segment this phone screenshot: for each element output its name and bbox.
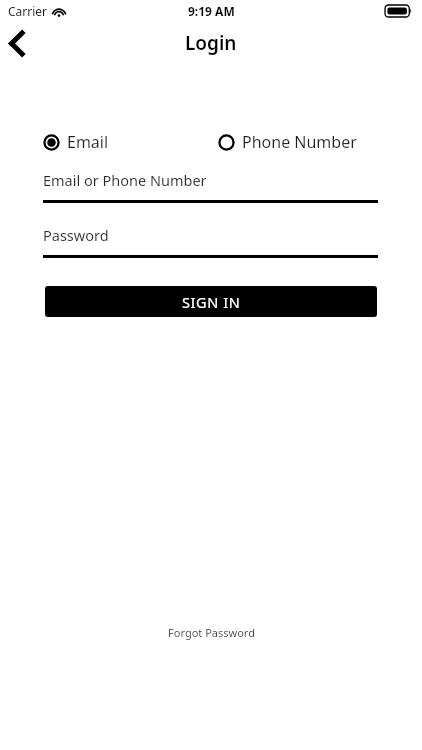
button[interactable]: Phone Number (218, 131, 357, 153)
staticText: SIGN IN (182, 292, 241, 312)
button[interactable]: SIGN IN (45, 286, 377, 317)
staticText: Email (67, 131, 109, 153)
button[interactable]: Email or Phone Number (43, 170, 378, 203)
staticText: Carrier (8, 3, 48, 19)
button[interactable]: Back (0, 22, 39, 64)
staticText: Password (43, 225, 109, 245)
button[interactable]: Password (43, 225, 378, 258)
staticText: Phone Number (242, 131, 357, 153)
button[interactable]: Forgot Password (158, 620, 265, 645)
staticText: 9:19 AM (188, 3, 235, 19)
staticText: Forgot Password (168, 625, 255, 640)
button[interactable]: Email (43, 131, 218, 153)
staticText: Email or Phone Number (43, 170, 207, 190)
staticText: Login (185, 30, 237, 56)
